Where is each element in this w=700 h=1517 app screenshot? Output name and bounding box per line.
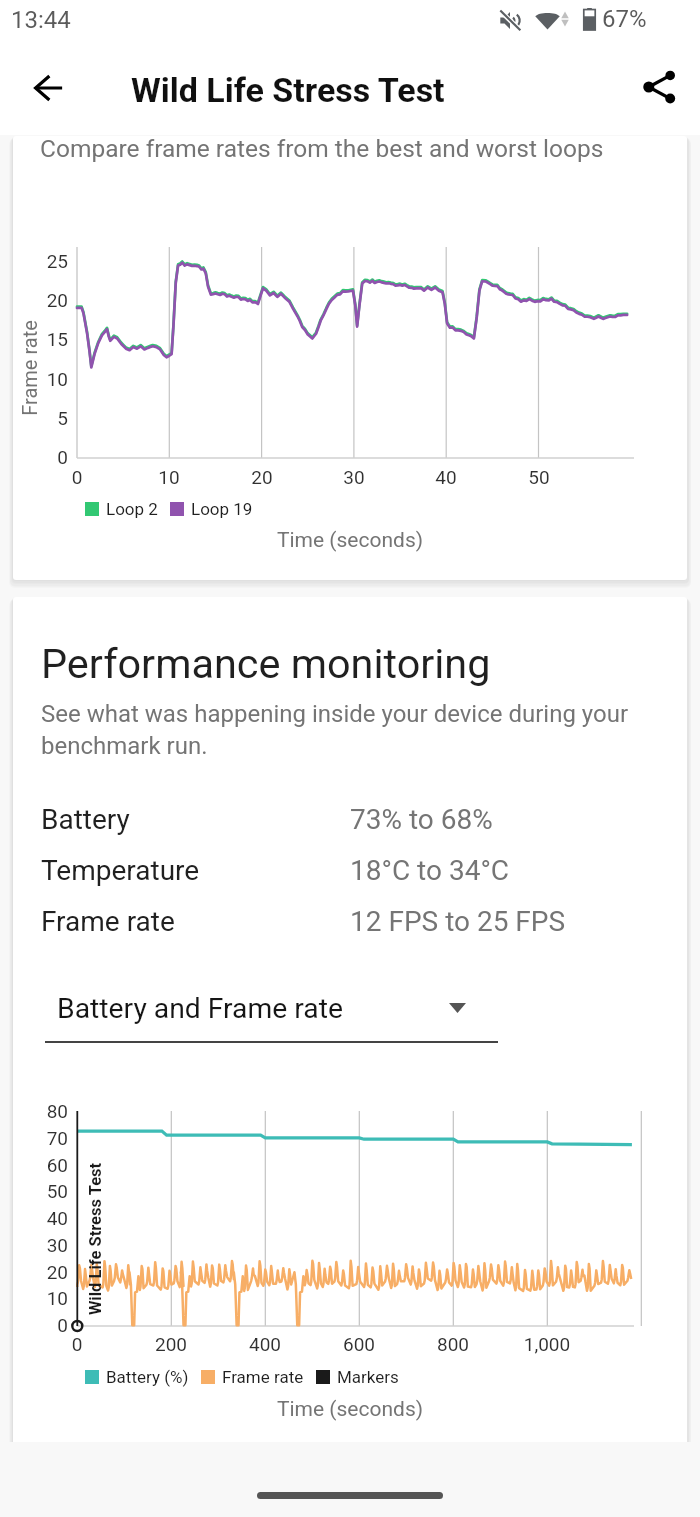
staticText: See what was happening inside your devic… [41, 700, 629, 759]
staticText: Temperature [41, 854, 200, 887]
staticText: 30 [28, 1234, 68, 1256]
staticText: 800 [418, 1333, 488, 1355]
staticText: Frame rate [222, 1367, 304, 1387]
staticText: 20 [28, 1261, 68, 1283]
staticText: Loop 2 [106, 499, 158, 519]
staticText: Loop 19 [191, 499, 253, 519]
staticText: 40 [28, 1207, 68, 1229]
staticText: 40 [421, 466, 471, 488]
button[interactable]: Back [18, 58, 78, 118]
staticText: 80 [28, 1100, 68, 1122]
staticText: 0 [52, 466, 102, 488]
staticText: 10 [28, 1287, 68, 1309]
staticText: 25 [30, 250, 68, 272]
staticText: 30 [329, 466, 379, 488]
staticText: 400 [230, 1333, 300, 1355]
staticText: 20 [237, 466, 287, 488]
staticText: 50 [514, 466, 564, 488]
button[interactable]: Share [629, 57, 689, 117]
staticText: 0 [30, 446, 68, 468]
staticText: 200 [136, 1333, 206, 1355]
staticText: 60 [28, 1154, 68, 1176]
staticText: Frame rate [18, 308, 41, 428]
staticText: Markers [337, 1367, 399, 1387]
staticText: 600 [324, 1333, 394, 1355]
staticText: 15 [30, 328, 68, 350]
staticText: 18°C to 34°C [350, 854, 510, 887]
staticText: Compare frame rates from the best and wo… [40, 134, 604, 163]
staticText: Performance monitoring [41, 640, 491, 689]
staticText: 20 [30, 289, 68, 311]
staticText: 12 FPS to 25 FPS [350, 905, 566, 938]
staticText: 13:44 [11, 6, 71, 34]
staticText: Time (seconds) [0, 528, 700, 553]
staticText: 1,000 [512, 1333, 582, 1355]
staticText: 5 [30, 407, 68, 429]
staticText: 10 [30, 368, 68, 390]
staticText: 50 [28, 1180, 68, 1202]
staticText: 73% to 68% [350, 803, 493, 836]
staticText: Wild Life Stress Test [86, 1149, 105, 1329]
staticText: 70 [28, 1127, 68, 1149]
staticText: 67% [602, 5, 647, 33]
staticText: 10 [144, 466, 194, 488]
staticText: 0 [28, 1314, 68, 1336]
staticText: Battery (%) [106, 1367, 189, 1387]
staticText: Wild Life Stress Test [131, 70, 445, 110]
staticText: Frame rate [41, 905, 175, 938]
staticText: Battery [41, 803, 130, 836]
staticText: 0 [42, 1333, 112, 1355]
staticText: Time (seconds) [0, 1397, 700, 1422]
staticText: Battery and Frame rate [57, 992, 344, 1025]
button[interactable]: Battery and Frame rate [45, 975, 498, 1043]
